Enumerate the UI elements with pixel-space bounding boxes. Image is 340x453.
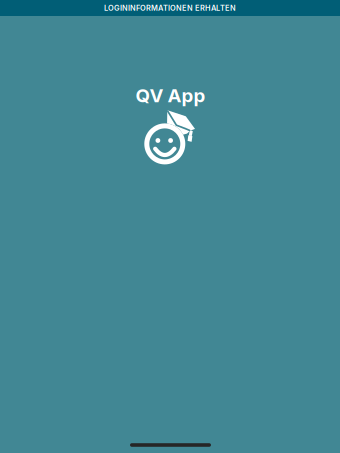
staticText: LOGININFORMATIONEN ERHALTEN (104, 3, 236, 12)
staticText: QV App (135, 84, 205, 107)
